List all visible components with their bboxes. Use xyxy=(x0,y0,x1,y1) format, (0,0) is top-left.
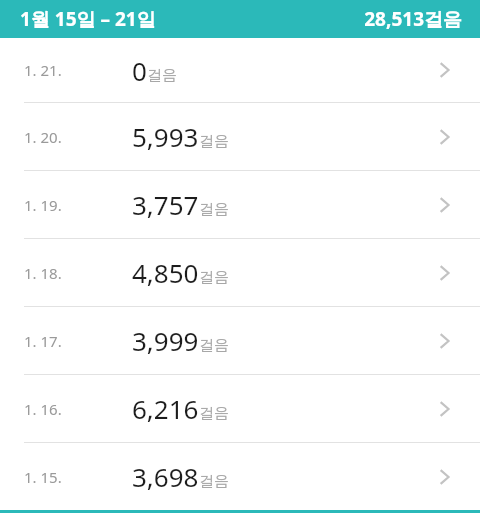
staticText: 걸음 xyxy=(199,472,229,491)
button[interactable]: 1. 19. xyxy=(0,171,480,238)
other: Open details xyxy=(430,462,460,492)
staticText: 1. 21. xyxy=(24,60,62,80)
button[interactable]: 1. 21. xyxy=(0,38,480,102)
button[interactable]: 1. 17. xyxy=(0,307,480,374)
staticText: 1. 16. xyxy=(24,399,62,419)
other: Open details xyxy=(430,326,460,356)
button[interactable]: 1. 18. xyxy=(0,239,480,306)
button[interactable]: 1. 16. xyxy=(0,375,480,442)
staticText: 4,850 xyxy=(132,255,199,290)
button[interactable]: 1. 15. xyxy=(0,443,480,510)
staticText: 걸음 xyxy=(147,66,177,85)
other: Open details xyxy=(430,394,460,424)
button[interactable]: 1월 15일 – 21일 xyxy=(0,0,480,38)
button[interactable]: 1. 20. xyxy=(0,103,480,170)
staticText: 3,757 xyxy=(132,187,199,222)
staticText: 걸음 xyxy=(199,336,229,355)
staticText: 6,216 xyxy=(132,391,199,426)
staticText: 걸음 xyxy=(199,268,229,287)
staticText: 1. 20. xyxy=(24,127,62,147)
staticText: 걸음 xyxy=(199,132,229,151)
staticText: 1. 18. xyxy=(24,263,62,283)
other: Open details xyxy=(430,190,460,220)
staticText: 1월 15일 – 21일 xyxy=(20,6,156,32)
other: Open details xyxy=(430,55,460,85)
staticText: 1. 15. xyxy=(24,467,62,487)
staticText: 0 xyxy=(132,53,147,88)
staticText: 28,513걸음 xyxy=(364,6,462,32)
staticText: 5,993 xyxy=(132,119,199,154)
staticText: 걸음 xyxy=(199,404,229,423)
staticText: 1. 17. xyxy=(24,331,62,351)
staticText: 3,999 xyxy=(132,323,199,358)
staticText: 3,698 xyxy=(132,459,199,494)
staticText: 걸음 xyxy=(199,200,229,219)
other: Open details xyxy=(430,122,460,152)
other: Open details xyxy=(430,258,460,288)
staticText: 1. 19. xyxy=(24,195,62,215)
